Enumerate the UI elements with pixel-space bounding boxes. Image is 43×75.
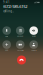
staticText: 9:41 (3, 0, 10, 4)
button[interactable]: FaceTime (14, 40, 27, 51)
button[interactable]: mute (0, 26, 13, 37)
staticText: add (5, 49, 8, 51)
staticText: contacts (31, 49, 37, 51)
staticText: audio (32, 35, 36, 37)
button[interactable]: End call (17, 55, 26, 64)
button[interactable]: contacts (27, 40, 40, 51)
button[interactable]: keypad (14, 26, 27, 37)
staticText: keypad (17, 35, 23, 37)
button[interactable]: add (0, 40, 13, 51)
staticText: calling… (3, 9, 14, 13)
staticText: FaceTime (17, 49, 24, 51)
staticText: (672) 585-6152 (3, 4, 27, 9)
button[interactable]: audio (27, 26, 40, 37)
staticText: mute (5, 35, 8, 37)
